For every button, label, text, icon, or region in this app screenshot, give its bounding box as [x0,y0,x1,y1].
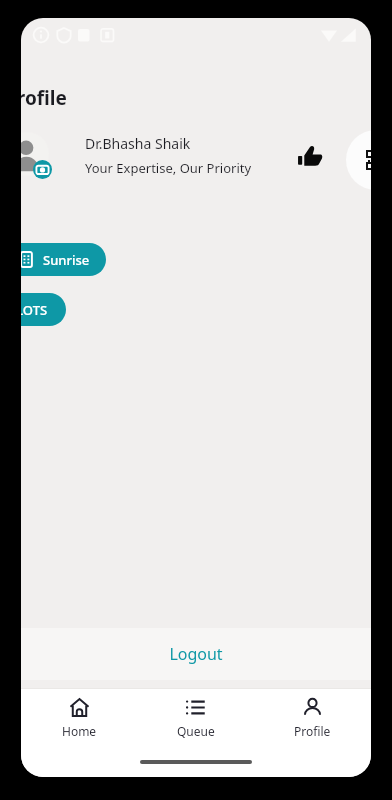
button[interactable]: Logout [21,628,371,680]
button[interactable]: Profile [254,689,371,747]
button[interactable]: Queue [137,689,254,747]
button[interactable]: Like [297,144,323,170]
staticText: Logout [169,643,223,665]
button[interactable]: Change photo [21,122,355,186]
staticText: Dr.Bhasha Shaik [85,134,191,153]
button[interactable]: Change photo [33,160,52,179]
staticText: SLOTS [21,301,48,319]
staticText: Home [62,723,97,739]
button[interactable]: Home [21,689,137,747]
staticText: Queue [177,723,215,739]
staticText: Profile [294,723,331,739]
button[interactable]: SLOTS [21,293,66,326]
staticText: Your Expertise, Our Priority [85,159,252,177]
staticText: Sunrise [43,251,90,269]
staticText: Profile [21,85,67,111]
button[interactable]: QR code [346,130,371,190]
button[interactable]: Sunrise [21,243,106,276]
